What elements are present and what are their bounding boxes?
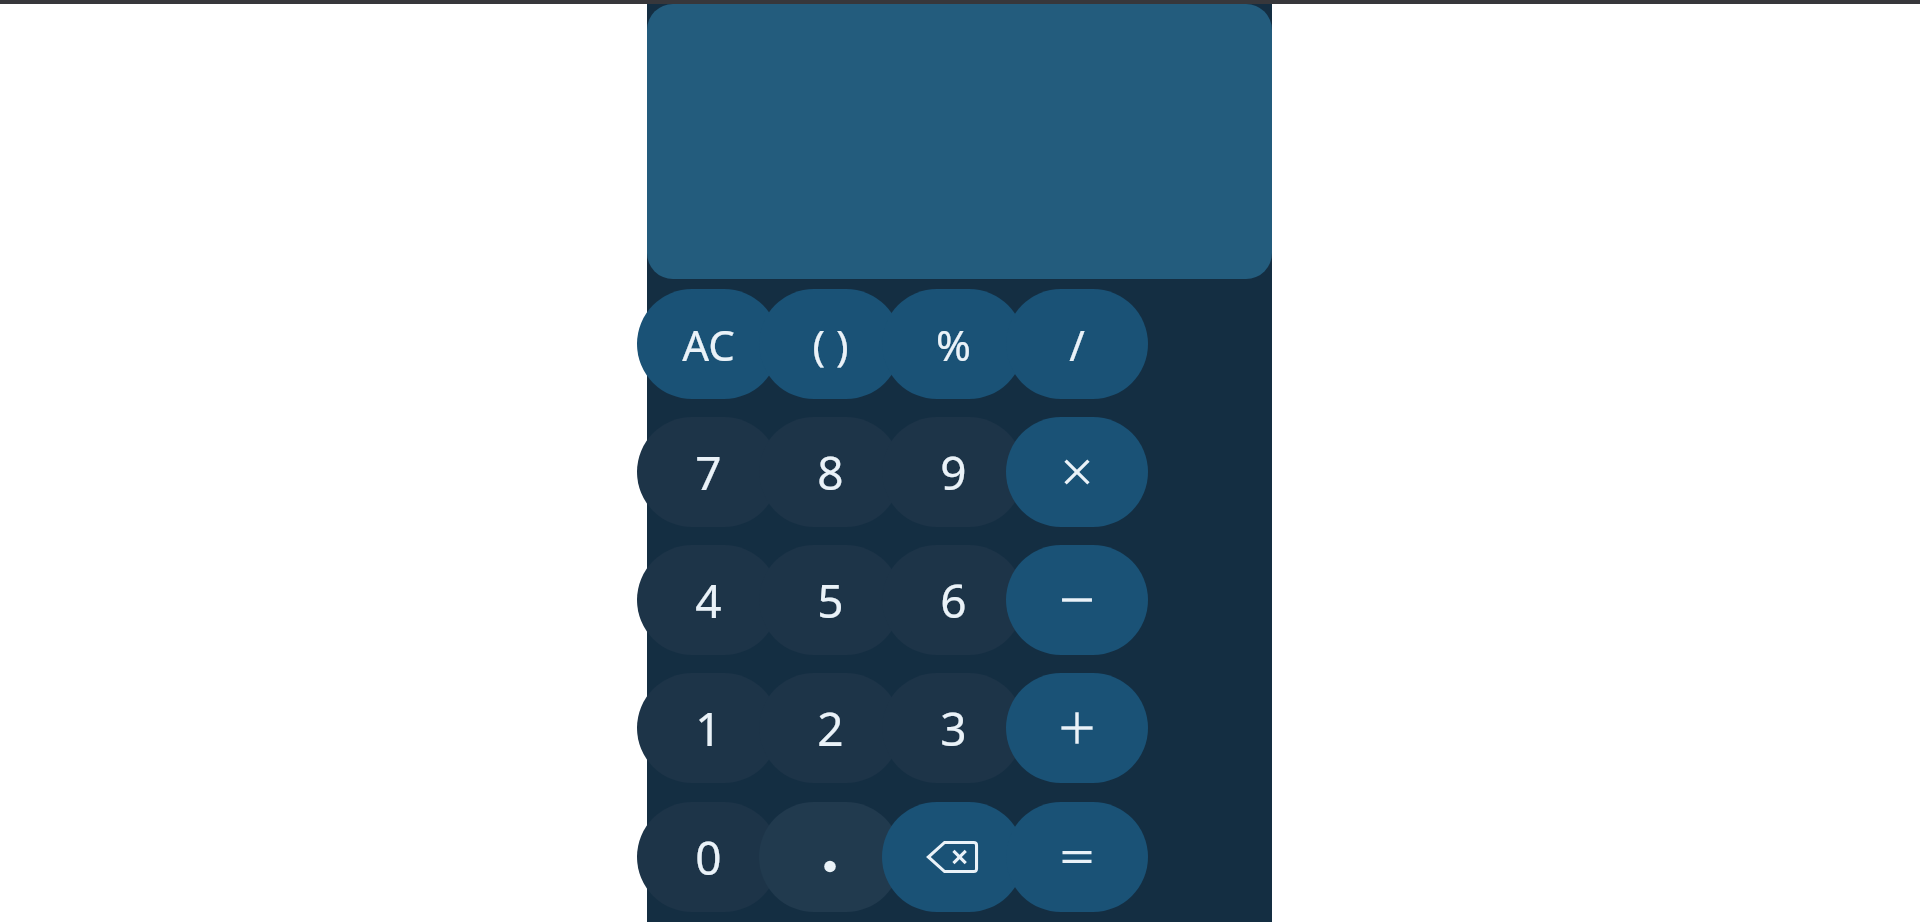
button[interactable]: %: [882, 289, 1024, 399]
staticText: 1: [695, 697, 722, 760]
staticText: 6: [940, 569, 967, 632]
staticText: 5: [817, 569, 844, 632]
staticText: %: [936, 316, 971, 373]
button[interactable]: 2: [759, 673, 901, 783]
button[interactable]: Multiply: [1006, 417, 1148, 527]
staticText: /: [1069, 316, 1085, 373]
staticText: 9: [940, 441, 967, 504]
button[interactable]: 7: [637, 417, 779, 527]
button[interactable]: 6: [882, 545, 1024, 655]
staticText: ( ): [812, 316, 849, 373]
staticText: 0: [695, 826, 722, 889]
staticText: 3: [940, 697, 967, 760]
button[interactable]: /: [1006, 289, 1148, 399]
button[interactable]: AC: [637, 289, 779, 399]
button[interactable]: Subtract: [1006, 545, 1148, 655]
staticText: AC: [682, 316, 735, 373]
staticText: 2: [817, 697, 844, 760]
button[interactable]: 1: [637, 673, 779, 783]
staticText: 4: [695, 569, 722, 632]
staticText: 8: [817, 441, 844, 504]
button[interactable]: 4: [637, 545, 779, 655]
button[interactable]: 5: [759, 545, 901, 655]
button[interactable]: Backspace: [882, 802, 1024, 912]
button[interactable]: [759, 802, 901, 912]
button[interactable]: Equals: [1006, 802, 1148, 912]
button[interactable]: ( ): [759, 289, 901, 399]
button[interactable]: [647, 4, 1272, 279]
button[interactable]: 3: [882, 673, 1024, 783]
button[interactable]: 0: [637, 802, 779, 912]
button[interactable]: 8: [759, 417, 901, 527]
staticText: 7: [695, 441, 722, 504]
button[interactable]: 9: [882, 417, 1024, 527]
button[interactable]: Add: [1006, 673, 1148, 783]
